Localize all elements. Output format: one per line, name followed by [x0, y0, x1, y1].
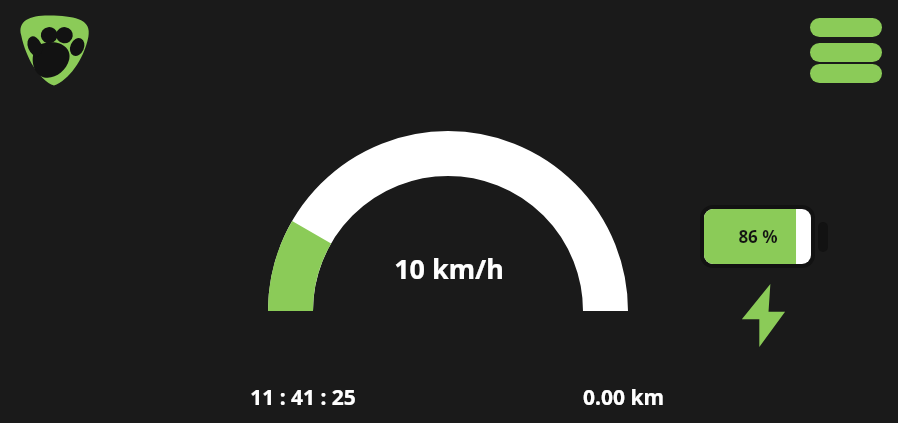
button[interactable]: Battery 86 percent — [697, 200, 833, 274]
staticText: 86 % — [738, 225, 778, 248]
other: Charging — [740, 284, 786, 347]
button[interactable]: App logo — [14, 13, 94, 87]
staticText: 0.00 km — [583, 383, 664, 412]
staticText: 11 : 41 : 25 — [250, 383, 356, 412]
staticText: 10 km/h — [394, 250, 504, 284]
button[interactable]: Menu — [802, 10, 890, 88]
